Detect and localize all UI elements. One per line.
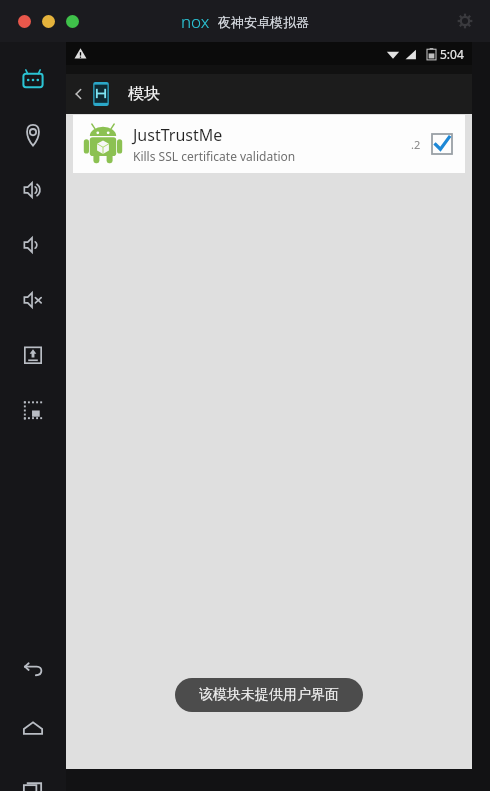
button[interactable]: 模块 <box>66 74 172 114</box>
button[interactable]: Toolbox <box>13 60 53 100</box>
button[interactable]: Volume up <box>13 170 53 210</box>
staticText: 模块 <box>128 84 160 104</box>
button[interactable]: Volume down <box>13 225 53 265</box>
staticText: Kills SSL certificate validation <box>133 148 296 164</box>
button[interactable]: Back <box>13 649 53 689</box>
button[interactable]: Recents <box>13 769 53 791</box>
staticText: 该模块未提供用户界面 <box>199 686 339 704</box>
button[interactable]: JustTrustMe <box>73 115 465 173</box>
staticText: 夜神安卓模拟器 <box>218 14 309 30</box>
button[interactable]: Mute <box>13 280 53 320</box>
button[interactable]: Home <box>13 709 53 749</box>
button[interactable]: Close <box>18 15 31 28</box>
button[interactable]: Minimise <box>42 15 55 28</box>
button[interactable]: Settings <box>454 10 476 32</box>
staticText: 5:04 <box>440 46 464 62</box>
button[interactable]: Enabled <box>429 131 455 157</box>
staticText: JustTrustMe <box>133 124 223 146</box>
staticText: nox <box>181 10 210 33</box>
button[interactable]: Record screen <box>13 390 53 430</box>
button[interactable]: Install APK <box>13 335 53 375</box>
button[interactable]: Location <box>13 115 53 155</box>
staticText: .2 <box>411 137 421 152</box>
button[interactable]: 该模块未提供用户界面 <box>175 678 363 712</box>
button[interactable]: Maximise <box>66 15 79 28</box>
